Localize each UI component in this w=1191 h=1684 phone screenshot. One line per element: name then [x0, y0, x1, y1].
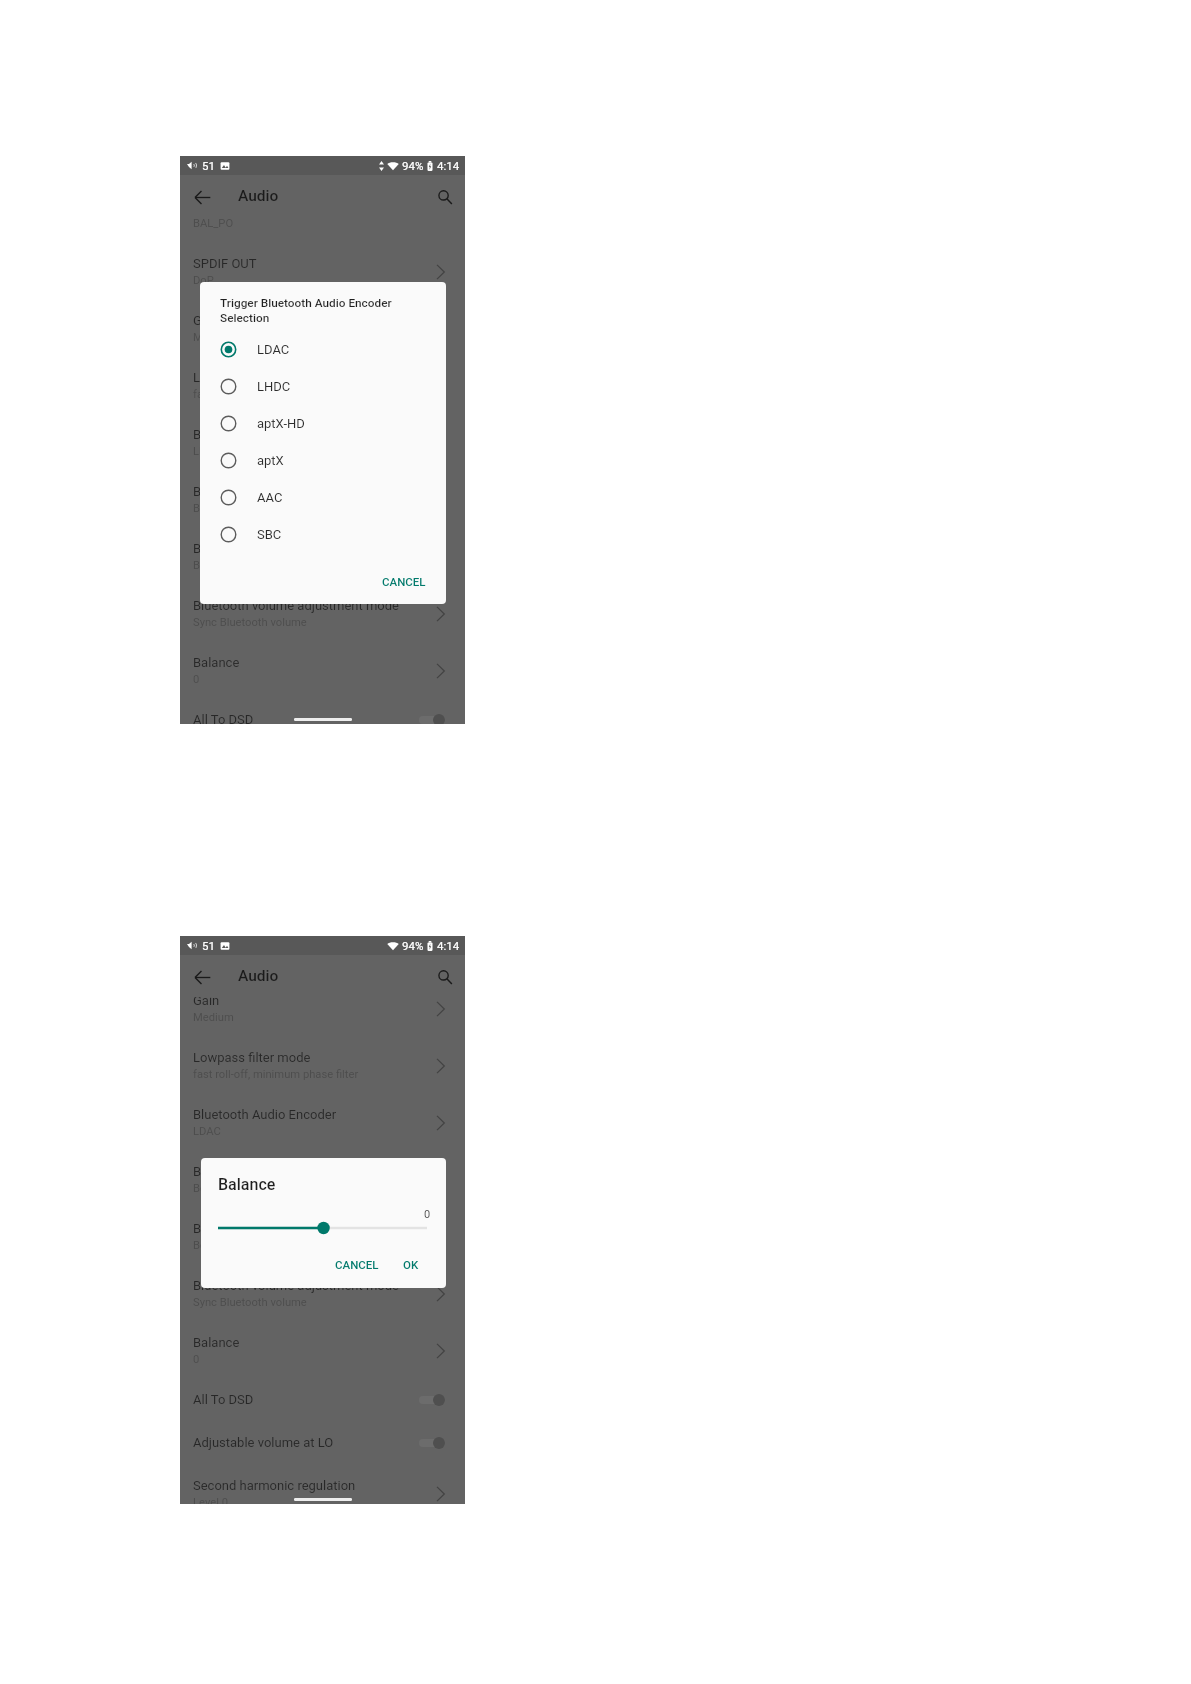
button[interactable]: Back	[189, 184, 215, 210]
button[interactable]: Bluetooth Audio Bits Per Sample	[180, 525, 465, 582]
staticText: Second harmonic regulation	[193, 1478, 356, 1493]
button[interactable]: LHDC	[200, 368, 446, 405]
staticText: AAC	[257, 490, 283, 505]
staticText: Lowpass filter mode	[193, 1050, 311, 1065]
staticText: Balance	[218, 1175, 276, 1194]
button[interactable]: Balance	[180, 1319, 465, 1376]
button[interactable]: AAC	[200, 479, 446, 516]
staticText: Audio	[238, 187, 279, 205]
staticText: LDAC	[257, 342, 290, 357]
button[interactable]: aptX-HD	[200, 405, 446, 442]
button[interactable]: Back	[189, 964, 215, 990]
staticText: 94%	[402, 939, 424, 952]
button[interactable]: Bluetooth Audio Sample Rate	[180, 1148, 465, 1205]
button[interactable]: All To DSD	[180, 696, 465, 724]
button[interactable]: Second harmonic regulation	[180, 1462, 465, 1504]
button[interactable]: Gain	[180, 297, 465, 354]
button[interactable]: Toggle All To DSD	[419, 1394, 445, 1406]
staticText: LDAC	[193, 1125, 221, 1138]
button[interactable]: Toggle All To DSD	[419, 714, 445, 724]
button[interactable]: Bluetooth Audio Encoder	[180, 411, 465, 468]
staticText: Medium	[193, 1011, 234, 1024]
button[interactable]: Search	[432, 964, 458, 990]
staticText: Gain	[193, 313, 220, 328]
staticText: Best Effort	[193, 559, 247, 572]
staticText: LDAC	[193, 445, 221, 458]
staticText: OK	[403, 1258, 419, 1271]
button[interactable]: CANCEL	[328, 1251, 386, 1278]
staticText: Gain	[193, 997, 220, 1008]
staticText: All To DSD	[193, 1392, 254, 1407]
staticText: CANCEL	[335, 1258, 379, 1271]
staticText: Bluetooth Audio Bits Per Sample	[193, 1221, 381, 1236]
button[interactable]: aptX	[200, 442, 446, 479]
button[interactable]: Lowpass filter mode	[180, 1034, 465, 1091]
staticText: Trigger Bluetooth Audio Encoder Selectio…	[220, 296, 424, 325]
staticText: fast roll-off, minimum phase filter	[193, 388, 359, 401]
staticText: Best Effort	[193, 1239, 247, 1252]
staticText: Bluetooth Audio Sample Rate	[193, 1164, 362, 1179]
button[interactable]: Lowpass filter mode	[180, 354, 465, 411]
button[interactable]: Adjustable volume at LO	[180, 1419, 465, 1462]
button[interactable]: Gain	[180, 997, 465, 1034]
button[interactable]: LDAC	[200, 331, 446, 368]
staticText: Bluetooth volume adjustment mode	[193, 1278, 400, 1293]
staticText: Balance	[193, 655, 240, 670]
button[interactable]: Bluetooth Audio Encoder	[180, 1091, 465, 1148]
staticText: Sync Bluetooth volume	[193, 1296, 307, 1309]
staticText: Best Effort (Adaptive Bit Rate)	[193, 502, 342, 515]
button[interactable]: Bluetooth Audio Sample Rate	[180, 468, 465, 525]
staticText: Level 0	[193, 1496, 228, 1504]
staticText: Best Effort (Adaptive Bit Rate)	[193, 1182, 342, 1195]
staticText: Sync Bluetooth volume	[193, 616, 307, 629]
button[interactable]: Search	[432, 184, 458, 210]
staticText: aptX	[257, 453, 284, 468]
button[interactable]: Bluetooth volume adjustment mode	[180, 582, 465, 639]
button[interactable]: Bluetooth Audio Bits Per Sample	[180, 1205, 465, 1262]
staticText: Lowpass filter mode	[193, 370, 311, 385]
button[interactable]: Balance	[180, 639, 465, 696]
staticText: Audio	[238, 967, 279, 985]
staticText: CANCEL	[382, 575, 426, 588]
staticText: BAL_PO	[193, 217, 234, 230]
staticText: 51	[202, 939, 215, 952]
button[interactable]: SBC	[200, 516, 446, 553]
staticText: 0	[193, 1353, 200, 1366]
staticText: Adjustable volume at LO	[193, 1435, 334, 1450]
button[interactable]: OK	[396, 1251, 426, 1278]
staticText: fast roll-off, minimum phase filter	[193, 1068, 359, 1081]
staticText: All To DSD	[193, 712, 254, 724]
staticText: SBC	[257, 527, 282, 542]
staticText: SPDIF OUT	[193, 256, 257, 271]
staticText: 4:14	[437, 939, 460, 952]
staticText: 4:14	[437, 159, 460, 172]
staticText: Bluetooth Audio Bits Per Sample	[193, 541, 381, 556]
staticText: Bluetooth Audio Sample Rate	[193, 484, 362, 499]
staticText: 0	[424, 1208, 431, 1221]
staticText: Balance	[193, 1335, 240, 1350]
staticText: DoP	[193, 274, 214, 287]
staticText: 51	[202, 159, 215, 172]
button[interactable]: CANCEL	[374, 567, 434, 596]
staticText: LHDC	[257, 379, 291, 394]
staticText: 94%	[402, 159, 424, 172]
staticText: Bluetooth Audio Encoder	[193, 1107, 337, 1122]
button[interactable]: Bluetooth volume adjustment mode	[180, 1262, 465, 1319]
staticText: Medium	[193, 331, 234, 344]
staticText: 0	[193, 673, 200, 686]
staticText: Bluetooth volume adjustment mode	[193, 598, 400, 613]
staticText: aptX-HD	[257, 416, 305, 431]
button[interactable]: SPDIF OUT	[180, 240, 465, 297]
button[interactable]: All To DSD	[180, 1376, 465, 1419]
staticText: Bluetooth Audio Encoder	[193, 427, 337, 442]
button[interactable]: Toggle Adjustable volume at LO	[419, 1437, 445, 1449]
